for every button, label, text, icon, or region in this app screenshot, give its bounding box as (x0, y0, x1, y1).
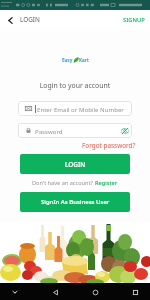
staticText: LOGIN (65, 160, 86, 169)
button[interactable]: Back (3, 13, 17, 27)
staticText: Password (35, 127, 63, 135)
staticText: Login to your account (0, 81, 150, 90)
staticText: Kart (79, 57, 89, 63)
staticText: LOGIN (20, 15, 40, 24)
button[interactable]: Register (95, 179, 118, 187)
button[interactable]: Enter Email or Mobile Number (18, 101, 132, 116)
button[interactable]: Home (88, 285, 102, 299)
staticText: Don't have an account? (32, 179, 95, 187)
button[interactable]: Password (18, 123, 132, 138)
button[interactable]: Back (48, 285, 62, 299)
button[interactable]: Hide keyboard (8, 285, 22, 299)
button[interactable]: LOGIN (20, 154, 130, 174)
button[interactable]: Forgot password? (82, 141, 136, 150)
staticText: Easy (62, 57, 73, 63)
staticText: SignIn As Business User (41, 198, 110, 206)
button[interactable]: SignIn As Business User (20, 192, 130, 212)
button[interactable]: SIGNUP (123, 16, 145, 24)
button[interactable]: Show password (120, 126, 129, 135)
staticText: Enter Email or Mobile Number (37, 105, 124, 113)
button[interactable]: Recent apps (128, 285, 142, 299)
